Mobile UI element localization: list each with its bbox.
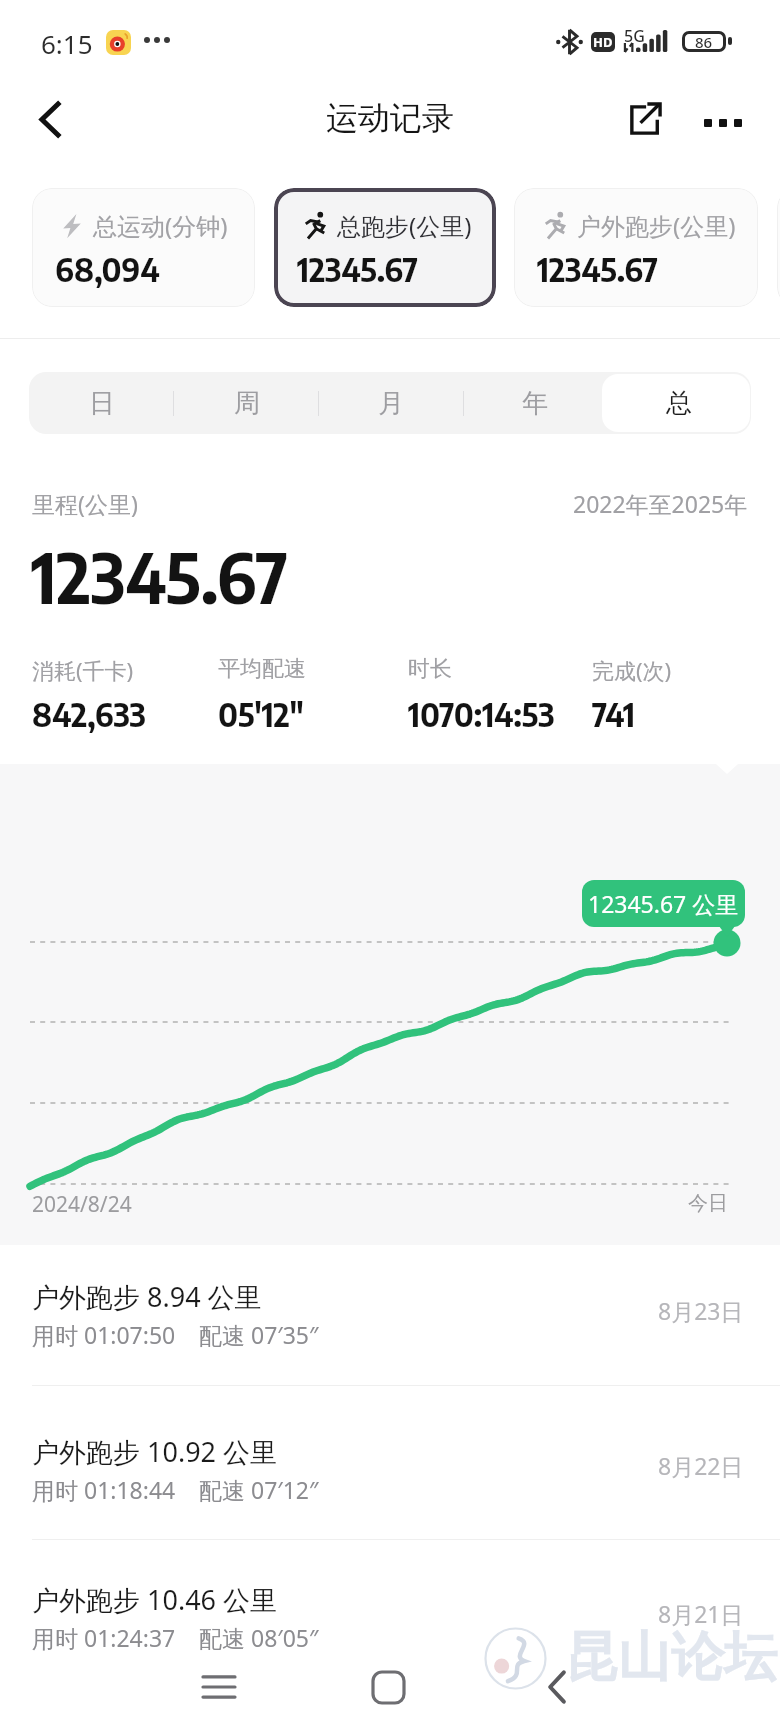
staticText: 配速 08′05″ <box>199 1622 319 1653</box>
staticText: 总跑步(公里) <box>337 209 472 242</box>
button[interactable]: Share <box>614 88 676 150</box>
staticText: 日 <box>89 387 115 420</box>
staticText: 总运动(分钟) <box>93 209 228 242</box>
staticText: 周 <box>234 387 260 420</box>
button[interactable]: 年 <box>463 372 607 434</box>
staticText: 运动记录 <box>326 98 454 138</box>
staticText: 完成(次) <box>592 655 672 685</box>
staticText: 12345.67 公里 <box>588 888 739 919</box>
staticText: 户外跑步 10.92 公里 <box>32 1433 278 1470</box>
button[interactable]: 总 <box>607 372 751 434</box>
button[interactable]: 户外跑步 10.46 公里 <box>0 1548 780 1698</box>
staticText: 用时 01:24:37 <box>32 1622 176 1653</box>
staticText: 昆山论坛 <box>565 1624 777 1691</box>
button[interactable]: 周 <box>174 372 319 434</box>
staticText: 05′12″ <box>218 694 304 734</box>
staticText: 8月21日 <box>658 1598 744 1629</box>
staticText: 用时 01:07:50 <box>32 1319 176 1350</box>
staticText: 12345.67 <box>537 249 659 289</box>
button[interactable]: 总跑步(公里) <box>274 188 496 307</box>
button[interactable]: 日 <box>29 372 174 434</box>
button[interactable]: 户外跑步 8.94 公里 <box>0 1245 780 1395</box>
staticText: 8月22日 <box>658 1450 744 1481</box>
staticText: 时长 <box>408 655 452 683</box>
button[interactable]: Back <box>21 91 77 147</box>
staticText: 户外跑步 10.46 公里 <box>32 1581 278 1618</box>
staticText: 里程(公里) <box>32 488 138 519</box>
staticText: 户外跑步 8.94 公里 <box>32 1278 262 1315</box>
button[interactable]: Back <box>520 1650 594 1724</box>
staticText: 消耗(千卡) <box>32 655 134 685</box>
button[interactable]: 总运动(分钟) <box>32 188 255 307</box>
staticText: 86 <box>695 32 713 52</box>
staticText: 842,633 <box>32 694 146 734</box>
staticText: 2022年至2025年 <box>573 488 748 519</box>
staticText: 68,094 <box>55 249 160 289</box>
staticText: 年 <box>522 387 548 420</box>
button[interactable]: Home <box>351 1650 425 1724</box>
staticText: 总 <box>666 387 692 420</box>
staticText: 12345.67 <box>297 249 419 289</box>
staticText: 今日 <box>688 1191 728 1216</box>
staticText: 1070:14:53 <box>408 694 555 734</box>
staticText: 12345.67 <box>31 534 289 619</box>
staticText: 2024/8/24 <box>32 1190 132 1219</box>
button[interactable]: 户外跑步 10.92 公里 <box>0 1400 780 1550</box>
staticText: 配速 07′35″ <box>199 1319 319 1350</box>
staticText: 用时 01:18:44 <box>32 1474 176 1505</box>
button[interactable]: Recents <box>182 1650 256 1724</box>
staticText: 户外跑步(公里) <box>577 209 736 242</box>
staticText: 741 <box>592 694 635 734</box>
staticText: 6:15 <box>41 26 93 61</box>
staticText: 月 <box>378 387 404 420</box>
staticText: 8月23日 <box>658 1295 744 1326</box>
button[interactable]: More options <box>692 92 754 154</box>
staticText: HD <box>593 33 613 51</box>
staticText: 5G <box>624 25 645 47</box>
button[interactable]: 户外跑步(公里) <box>514 188 758 307</box>
staticText: 配速 07′12″ <box>199 1474 319 1505</box>
button[interactable]: 月 <box>319 372 463 434</box>
staticText: 平均配速 <box>218 655 306 683</box>
